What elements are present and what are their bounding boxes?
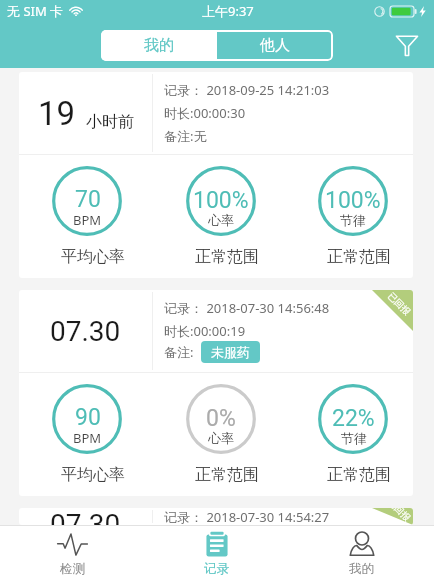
button[interactable]: 他人 (217, 30, 333, 61)
staticText: 记录： 2018-07-30 14:56:48 (164, 299, 330, 317)
staticText: 他人 (260, 36, 290, 55)
staticText: 备注: (164, 127, 194, 145)
staticText: 时长:00:00:19 (164, 322, 246, 340)
staticText: 已回报 (386, 508, 413, 523)
staticText: 平均心率 (61, 247, 125, 267)
button[interactable]: 19 (19, 72, 413, 278)
staticText: 正常范围 (327, 465, 391, 485)
button[interactable]: 我的 (289, 526, 434, 579)
staticText: 正常范围 (195, 247, 259, 267)
button[interactable]: 记录 (144, 526, 289, 579)
staticText: 心率 (208, 212, 234, 228)
staticText: 0% (206, 405, 236, 432)
staticText: 90 (75, 404, 101, 431)
button[interactable]: 检测 (0, 526, 144, 579)
staticText: 无 (194, 128, 207, 144)
staticText: 已回报 (386, 290, 413, 317)
staticText: 07.30 (50, 508, 121, 525)
staticText: 节律 (341, 430, 367, 446)
staticText: 100% (325, 187, 381, 214)
staticText: 正常范围 (195, 465, 259, 485)
staticText: 检测 (60, 561, 85, 577)
staticText: 19 (38, 94, 76, 133)
staticText: 心率 (208, 430, 234, 446)
staticText: 07.30 (50, 315, 121, 348)
staticText: 记录： 2018-07-30 14:54:27 (164, 508, 330, 525)
staticText: 记录 (204, 561, 229, 577)
staticText: 记录： 2018-09-25 14:21:03 (164, 81, 330, 99)
staticText: 备注: (164, 343, 194, 361)
staticText: 70 (75, 186, 101, 213)
staticText: 正常范围 (327, 247, 391, 267)
staticText: 未服药 (211, 344, 250, 360)
button[interactable]: Filter (390, 28, 424, 62)
staticText: BPM (73, 429, 102, 447)
staticText: 100% (193, 187, 249, 214)
staticText: 小时前 (86, 112, 134, 132)
staticText: 我的 (144, 36, 174, 55)
staticText: 无 SIM 卡 (7, 2, 64, 20)
staticText: 22% (332, 405, 375, 432)
staticText: BPM (73, 211, 102, 229)
staticText: 我的 (349, 561, 374, 577)
staticText: 节律 (340, 212, 366, 228)
staticText: 平均心率 (61, 465, 125, 485)
button[interactable]: 07.30 (19, 290, 413, 496)
button[interactable]: 我的 (101, 30, 217, 61)
staticText: 时长:00:00:30 (164, 104, 246, 122)
button[interactable]: 07.30 (19, 508, 413, 525)
staticText: 上午9:37 (202, 2, 254, 20)
